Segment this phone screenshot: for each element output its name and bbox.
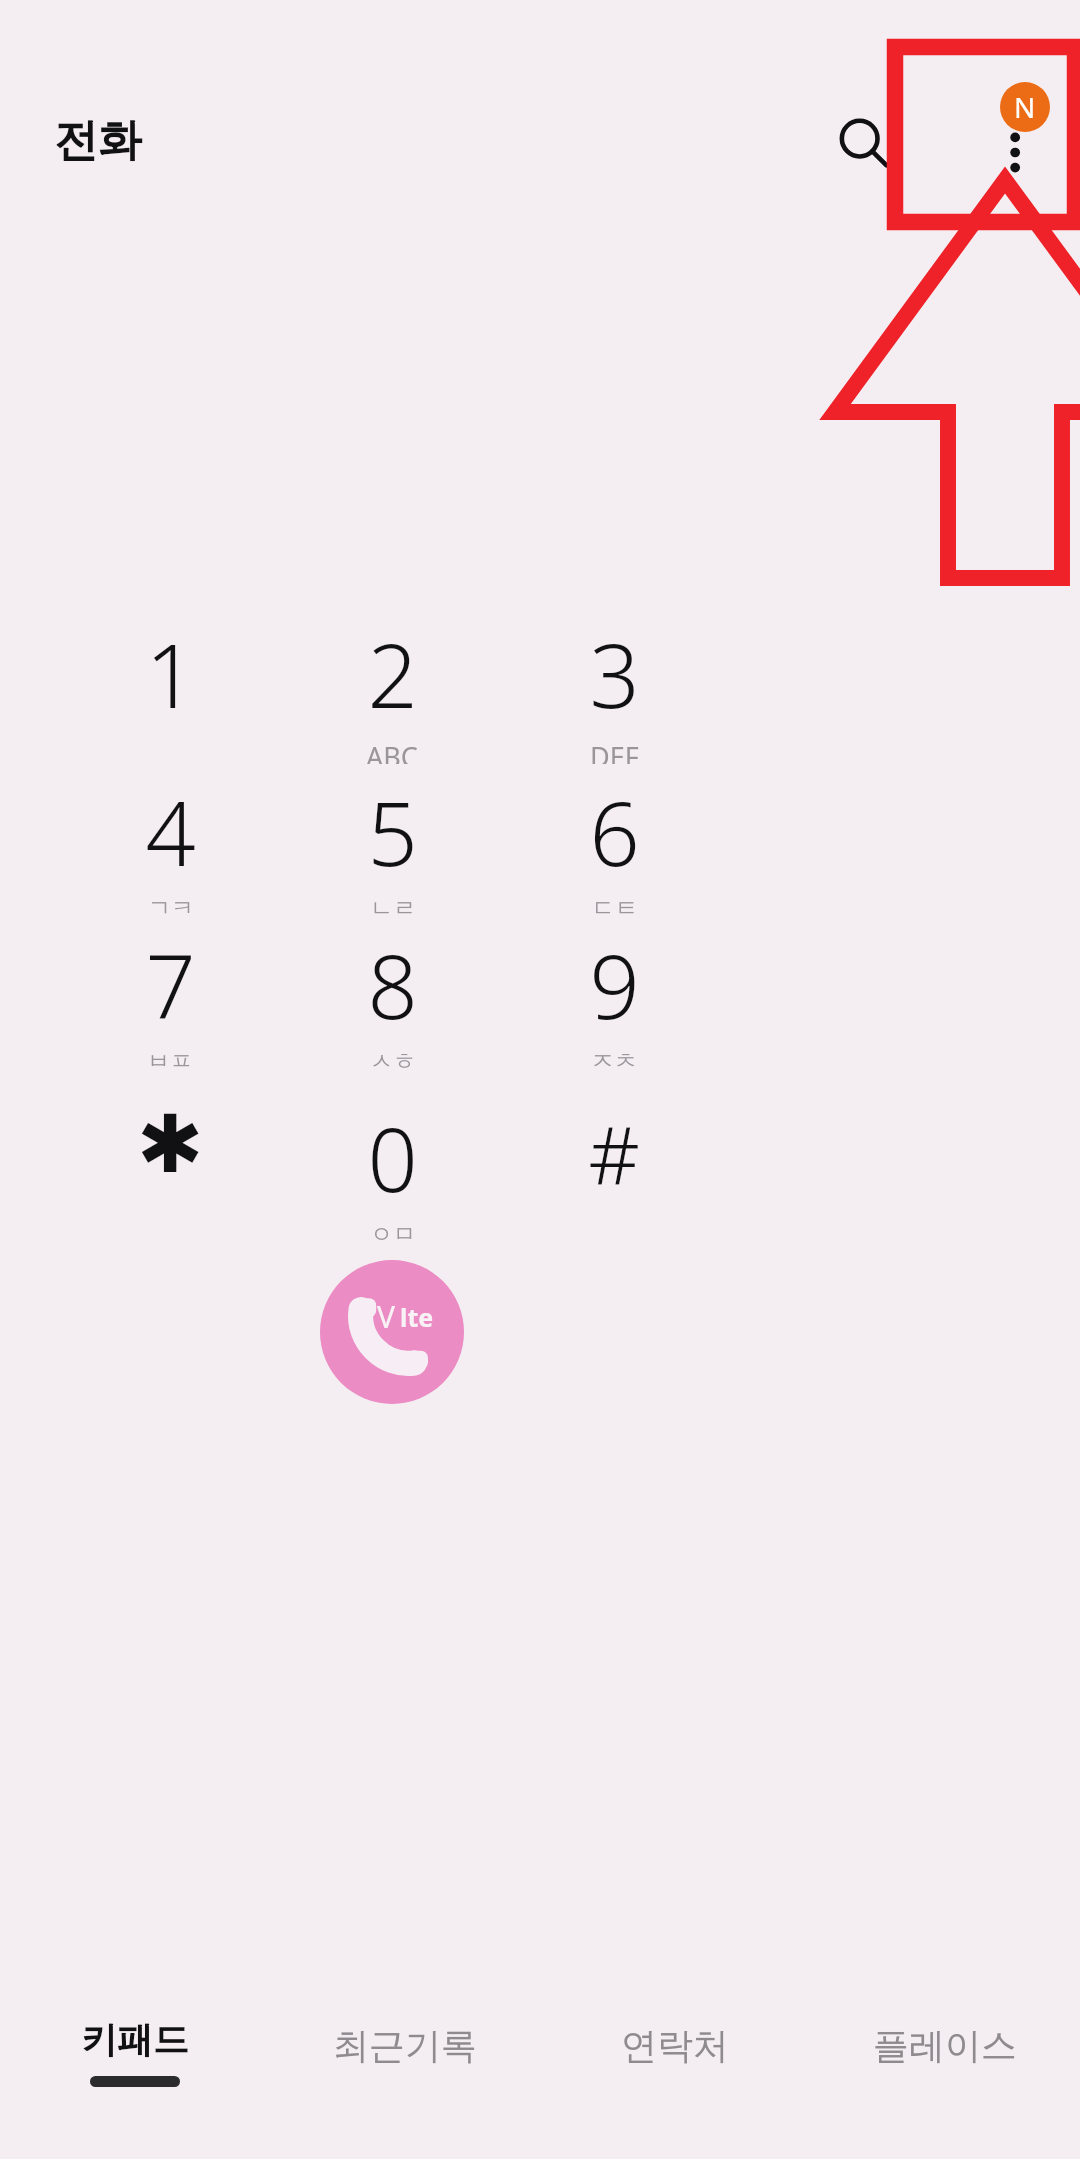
button[interactable]: More options xyxy=(974,100,1058,184)
staticText: 9 xyxy=(589,925,640,1045)
button[interactable]: 키패드 xyxy=(0,1989,270,2159)
staticText: 플레이스 xyxy=(873,2023,1017,2068)
button[interactable]: 최근기록 xyxy=(270,1989,540,2159)
staticText: ㅂㅍ xyxy=(147,1047,193,1075)
button[interactable]: 플레이스 xyxy=(810,1989,1080,2159)
staticText: V xyxy=(377,1296,395,1337)
staticText: N xyxy=(1014,88,1036,126)
button[interactable]: 3 xyxy=(504,614,724,764)
staticText: 키패드 xyxy=(81,2017,189,2062)
button[interactable]: Search xyxy=(822,102,906,186)
staticText: 7 xyxy=(145,925,196,1045)
button[interactable]: 0 xyxy=(282,1098,502,1248)
button[interactable]: 2 xyxy=(282,614,502,764)
staticText: lte xyxy=(400,1300,434,1334)
button[interactable]: 8 xyxy=(282,925,502,1075)
staticText: ✱ xyxy=(136,1098,204,1191)
staticText: 최근기록 xyxy=(333,2023,477,2068)
staticText: 4 xyxy=(145,772,196,892)
button[interactable]: 1 xyxy=(60,614,280,764)
button[interactable]: 7 xyxy=(60,925,280,1075)
staticText: 연락처 xyxy=(621,2023,729,2068)
staticText: ㅇㅁ xyxy=(370,1220,416,1248)
button[interactable]: # xyxy=(504,1098,724,1248)
staticText: ㅈㅊ xyxy=(591,1047,637,1075)
button[interactable]: 연락처 xyxy=(540,1989,810,2159)
button[interactable]: 6 xyxy=(504,772,724,922)
staticText: ㄱㅋ xyxy=(148,894,194,922)
staticText: 2 xyxy=(367,614,418,734)
button[interactable]: 5 xyxy=(282,772,502,922)
button[interactable]: ✱ xyxy=(60,1098,280,1248)
staticText: ㄷㅌ xyxy=(592,894,638,922)
button[interactable]: 4 xyxy=(60,772,280,922)
staticText: 5 xyxy=(367,772,418,892)
staticText: 8 xyxy=(367,925,418,1045)
staticText: 0 xyxy=(367,1098,418,1218)
staticText: 전화 xyxy=(54,113,142,168)
button[interactable]: 9 xyxy=(504,925,724,1075)
staticText: DEF xyxy=(590,738,639,764)
staticText: ABC xyxy=(366,738,418,764)
staticText: 6 xyxy=(589,772,640,892)
button[interactable]: Call xyxy=(320,1260,464,1404)
staticText: ㄴㄹ xyxy=(370,894,416,922)
staticText: # xyxy=(588,1098,640,1207)
staticText: 1 xyxy=(145,614,196,734)
staticText: ㅅㅎ xyxy=(370,1047,416,1075)
staticText: 3 xyxy=(589,614,640,734)
